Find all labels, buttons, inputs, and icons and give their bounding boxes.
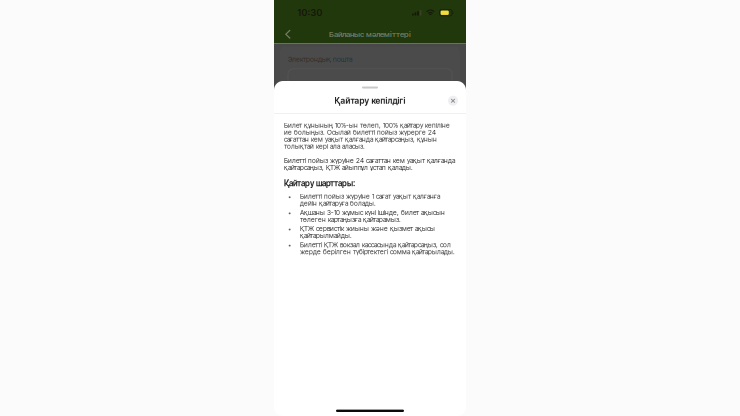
staticText: 10:30 [297,7,322,18]
staticText: Қайтару шарттары: [284,179,355,188]
staticText: Электрондық пошта [288,55,353,63]
staticText: Қайтару кепілдігі [334,96,405,106]
staticText: Билетті пойыз жүруіне 1 сағат уақыт қалғ… [300,192,440,207]
button[interactable]: Back [277,23,299,45]
staticText: Билетті пойыз жүруіне 24 сағаттан кем уа… [284,156,455,172]
staticText: Байланыс мәлеміттері [329,29,411,39]
staticText: Ақшаны 3-10 жұмыс күні ішінде, билет ақы… [300,208,445,223]
staticText: ҚТЖ сервистік жиыны және қызмет ақысы қа… [300,225,435,240]
button[interactable]: Close [444,92,462,110]
staticText: Билетті ҚТЖ вокзал кассасында қайтарсаңы… [300,241,455,256]
staticText: Билет құнының 10%-ын төлеп, 100% қайтару… [284,121,450,150]
